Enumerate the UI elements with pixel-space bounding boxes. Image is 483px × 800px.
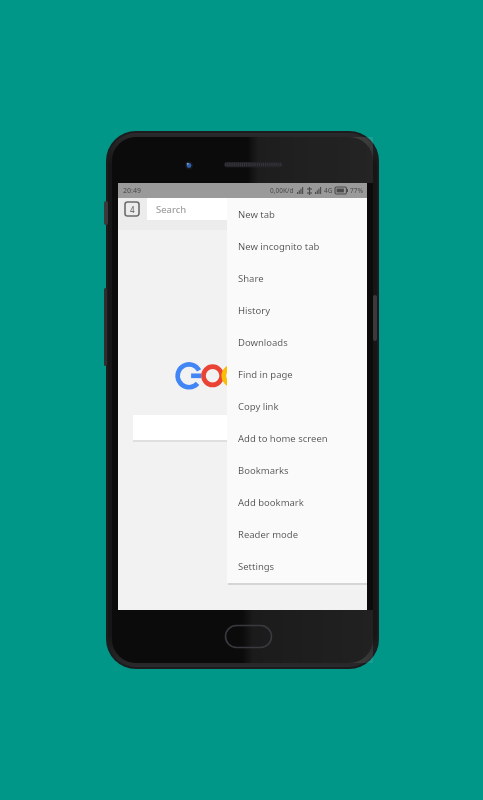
staticText: Find in page <box>238 368 293 381</box>
other: Power <box>373 295 377 341</box>
button[interactable]: Search box <box>133 415 333 440</box>
staticText: Add bookmark <box>238 496 304 509</box>
button[interactable]: Search <box>147 198 360 220</box>
button[interactable]: Add bookmark <box>227 486 367 518</box>
staticText: New tab <box>238 208 275 221</box>
staticText: Bookmarks <box>238 464 289 477</box>
button[interactable]: Find in page <box>227 358 367 390</box>
button[interactable]: New tab <box>227 198 367 230</box>
button[interactable]: Downloads <box>227 326 367 358</box>
staticText: New incognito tab <box>238 240 320 253</box>
other: Volume <box>104 201 108 225</box>
button[interactable]: Share <box>227 262 367 294</box>
button[interactable]: Settings <box>227 550 367 582</box>
button[interactable]: Bookmarks <box>227 454 367 486</box>
button[interactable]: Copy link <box>227 390 367 422</box>
staticText: Settings <box>238 560 275 573</box>
staticText: Search <box>156 203 187 216</box>
button[interactable]: Add to home screen <box>227 422 367 454</box>
button[interactable]: Tabs <box>125 202 139 216</box>
staticText: Share <box>238 272 264 285</box>
button[interactable]: Reader mode <box>227 518 367 550</box>
staticText: Copy link <box>238 400 279 413</box>
staticText: 4 <box>130 204 135 215</box>
button[interactable]: New incognito tab <box>227 230 367 262</box>
staticText: 4G <box>324 186 333 195</box>
staticText: Downloads <box>238 336 288 349</box>
staticText: Reader mode <box>238 528 299 541</box>
staticText: History <box>238 304 270 317</box>
staticText: 77% <box>350 186 363 195</box>
button[interactable]: History <box>227 294 367 326</box>
staticText: 20:49 <box>123 186 141 196</box>
staticText: Add to home screen <box>238 432 328 445</box>
staticText: 0,00K/d <box>270 186 294 195</box>
